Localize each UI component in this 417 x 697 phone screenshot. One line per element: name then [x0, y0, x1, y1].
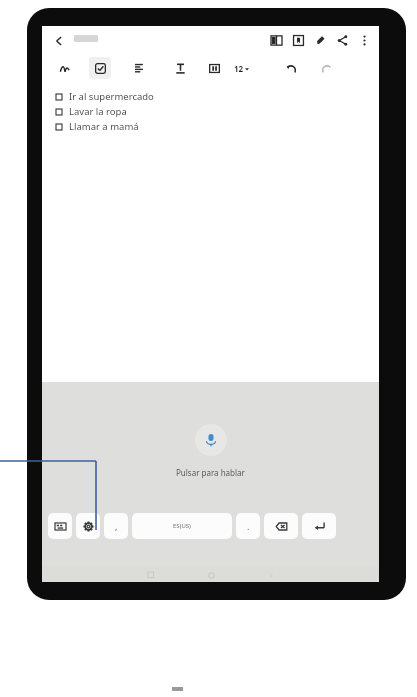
button[interactable]: Llamar a mamá	[56, 119, 379, 134]
button[interactable]: ES(US)	[132, 513, 232, 539]
button[interactable]: Backspace	[264, 513, 298, 539]
staticText: Ir al supermercado	[69, 90, 154, 103]
button[interactable]: Undo	[280, 57, 302, 79]
button[interactable]: ,	[104, 513, 128, 539]
button[interactable]: .	[236, 513, 260, 539]
staticText: Pulsar para hablar	[176, 467, 245, 478]
button[interactable]: Press to speak	[176, 424, 245, 478]
button[interactable]: Keyboard layout	[48, 513, 72, 539]
staticText: ,	[115, 520, 118, 532]
button[interactable]: Insert	[203, 57, 225, 79]
staticText: .	[247, 520, 250, 532]
button[interactable]: Bookmark	[287, 29, 309, 51]
button[interactable]: Redo	[315, 57, 337, 79]
button[interactable]: Checklist	[89, 57, 111, 79]
button[interactable]: Ir al supermercado	[56, 89, 379, 104]
button[interactable]: Text format	[169, 57, 191, 79]
button[interactable]: More options	[353, 29, 375, 51]
button[interactable]: Home	[204, 568, 218, 582]
button[interactable]: Settings	[76, 513, 100, 539]
staticText: Llamar a mamá	[69, 120, 139, 133]
button[interactable]: Enter	[302, 513, 336, 539]
button[interactable]: Back	[48, 30, 69, 51]
button[interactable]: Lavar la ropa	[56, 104, 379, 119]
button[interactable]: Paragraph style	[129, 57, 151, 79]
button[interactable]: Attach	[309, 29, 331, 51]
staticText: ES(US)	[173, 522, 191, 530]
button[interactable]: 12	[234, 60, 249, 77]
staticText: 12	[234, 63, 244, 74]
button[interactable]: Recents	[144, 568, 158, 582]
staticText: Lavar la ropa	[69, 105, 127, 118]
button[interactable]: Split view	[265, 29, 287, 51]
button[interactable]: Pen	[53, 57, 75, 79]
button[interactable]: Share	[331, 29, 353, 51]
